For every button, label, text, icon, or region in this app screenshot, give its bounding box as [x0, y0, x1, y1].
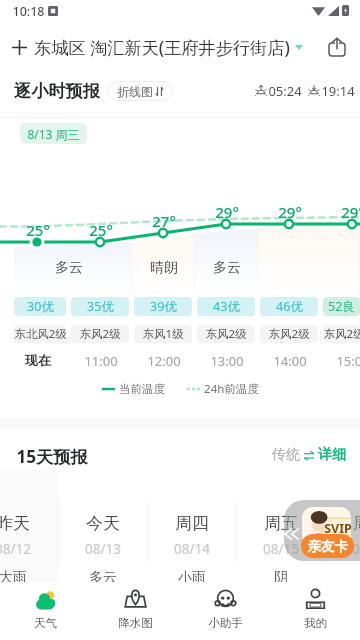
button[interactable]: Share — [322, 32, 352, 62]
staticText: 东北风2级 — [14, 326, 66, 342]
staticText: 39优 — [150, 298, 177, 315]
staticText: 周六 — [353, 513, 360, 534]
staticText: 08/13 — [85, 540, 121, 558]
button[interactable]: VIP promotion — [284, 500, 360, 561]
staticText: 阴 — [274, 569, 288, 587]
staticText: 15:00 — [336, 352, 360, 370]
staticText: 08/12 — [0, 540, 31, 558]
button[interactable]: 周五 — [237, 470, 325, 582]
staticText: 多云 — [55, 259, 83, 277]
staticText: 东风2级 — [323, 326, 360, 342]
staticText: 小助手 — [208, 616, 243, 630]
button[interactable]: 传统 — [272, 446, 346, 464]
staticText: 46优 — [276, 298, 303, 315]
staticText: 折线图 — [117, 84, 153, 99]
staticText: 东城区 淘汇新天(王府井步行街店) — [34, 36, 290, 59]
staticText: 大雨 — [0, 569, 27, 587]
staticText: 今天 — [86, 513, 120, 534]
staticText: 25° — [89, 220, 113, 240]
button[interactable]: 周六 — [326, 470, 360, 582]
staticText: 24h前温度 — [204, 381, 259, 397]
staticText: 43优 — [213, 298, 240, 315]
staticText: 25° — [26, 220, 50, 240]
staticText: 52良 — [328, 298, 355, 315]
staticText: 12:00 — [147, 352, 181, 370]
staticText: 详细 — [318, 446, 346, 464]
staticText: 当前温度 — [119, 382, 165, 396]
staticText: 35优 — [87, 298, 114, 315]
staticText: 29° — [215, 202, 239, 222]
staticText: 14:00 — [273, 352, 307, 370]
button[interactable]: Add city — [6, 34, 32, 60]
staticText: 8/13 周三 — [27, 126, 80, 142]
staticText: 我的 — [304, 616, 327, 630]
staticText: 东风1级 — [142, 326, 184, 342]
staticText: 东风2级 — [268, 326, 310, 342]
staticText: 29° — [278, 202, 302, 222]
button[interactable]: 东城区 淘汇新天(王府井步行街店) — [34, 36, 303, 59]
staticText: 11:00 — [84, 352, 118, 370]
staticText: 逐小时预报 — [14, 80, 100, 102]
button[interactable]: 我的 — [270, 582, 360, 640]
button[interactable]: 折线图 — [107, 81, 173, 101]
staticText: 29° — [341, 202, 360, 222]
button[interactable]: 昨天 — [0, 470, 57, 582]
button[interactable]: Friends card — [301, 534, 354, 558]
staticText: 08/14 — [174, 540, 210, 558]
staticText: 昨天 — [0, 513, 30, 534]
staticText: 10:18 — [12, 3, 45, 20]
staticText: 30优 — [27, 298, 54, 315]
staticText: 多云 — [213, 259, 241, 277]
staticText: 亲友卡 — [307, 538, 348, 555]
button[interactable]: 小助手 — [180, 582, 270, 640]
button[interactable]: 今天 — [59, 470, 147, 582]
staticText: 08/15 — [263, 540, 299, 558]
staticText: 小雨 — [178, 569, 206, 587]
staticText: 15天预报 — [16, 445, 88, 468]
staticText: 周四 — [175, 513, 209, 534]
staticText: 东风2级 — [205, 326, 247, 342]
staticText: 多云 — [89, 569, 117, 587]
staticText: SVIP — [324, 520, 351, 537]
staticText: 东风2级 — [79, 326, 121, 342]
staticText: 13:00 — [210, 352, 244, 370]
staticText: 天气 — [34, 616, 57, 630]
staticText: 现在 — [25, 352, 51, 368]
staticText: 降水图 — [118, 616, 153, 630]
staticText: 19:14 — [321, 82, 355, 100]
button[interactable]: 周四 — [148, 470, 236, 582]
staticText: 晴朗 — [150, 259, 178, 277]
staticText: 27° — [152, 211, 176, 231]
staticText: 周五 — [264, 513, 298, 534]
staticText: 05:24 — [268, 82, 302, 100]
button[interactable]: SVIP card — [302, 507, 351, 547]
button[interactable]: 降水图 — [90, 582, 180, 640]
button[interactable]: 天气 — [0, 582, 90, 640]
staticText: 传统 — [272, 446, 300, 464]
staticText: 08/16 — [352, 540, 360, 558]
